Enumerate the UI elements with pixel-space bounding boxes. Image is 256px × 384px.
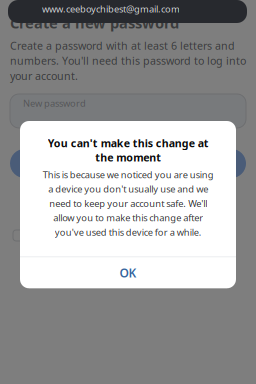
button[interactable]: Save in Google Password Manager for <box>8 0 247 23</box>
staticText: Remember password <box>30 230 137 244</box>
staticText: You can't make this change at the moment <box>47 136 208 164</box>
staticText: New password <box>23 97 86 109</box>
staticText: OK <box>119 265 136 281</box>
staticText: This is because we noticed you are using… <box>42 168 213 238</box>
staticText: Create a password with at least 6 letter… <box>10 38 246 83</box>
button[interactable]: OK <box>20 257 236 288</box>
staticText: www.ceeboychibest@gmail.com <box>42 3 180 15</box>
button[interactable]: Next <box>10 149 246 178</box>
staticText: Create a new password <box>10 13 179 32</box>
